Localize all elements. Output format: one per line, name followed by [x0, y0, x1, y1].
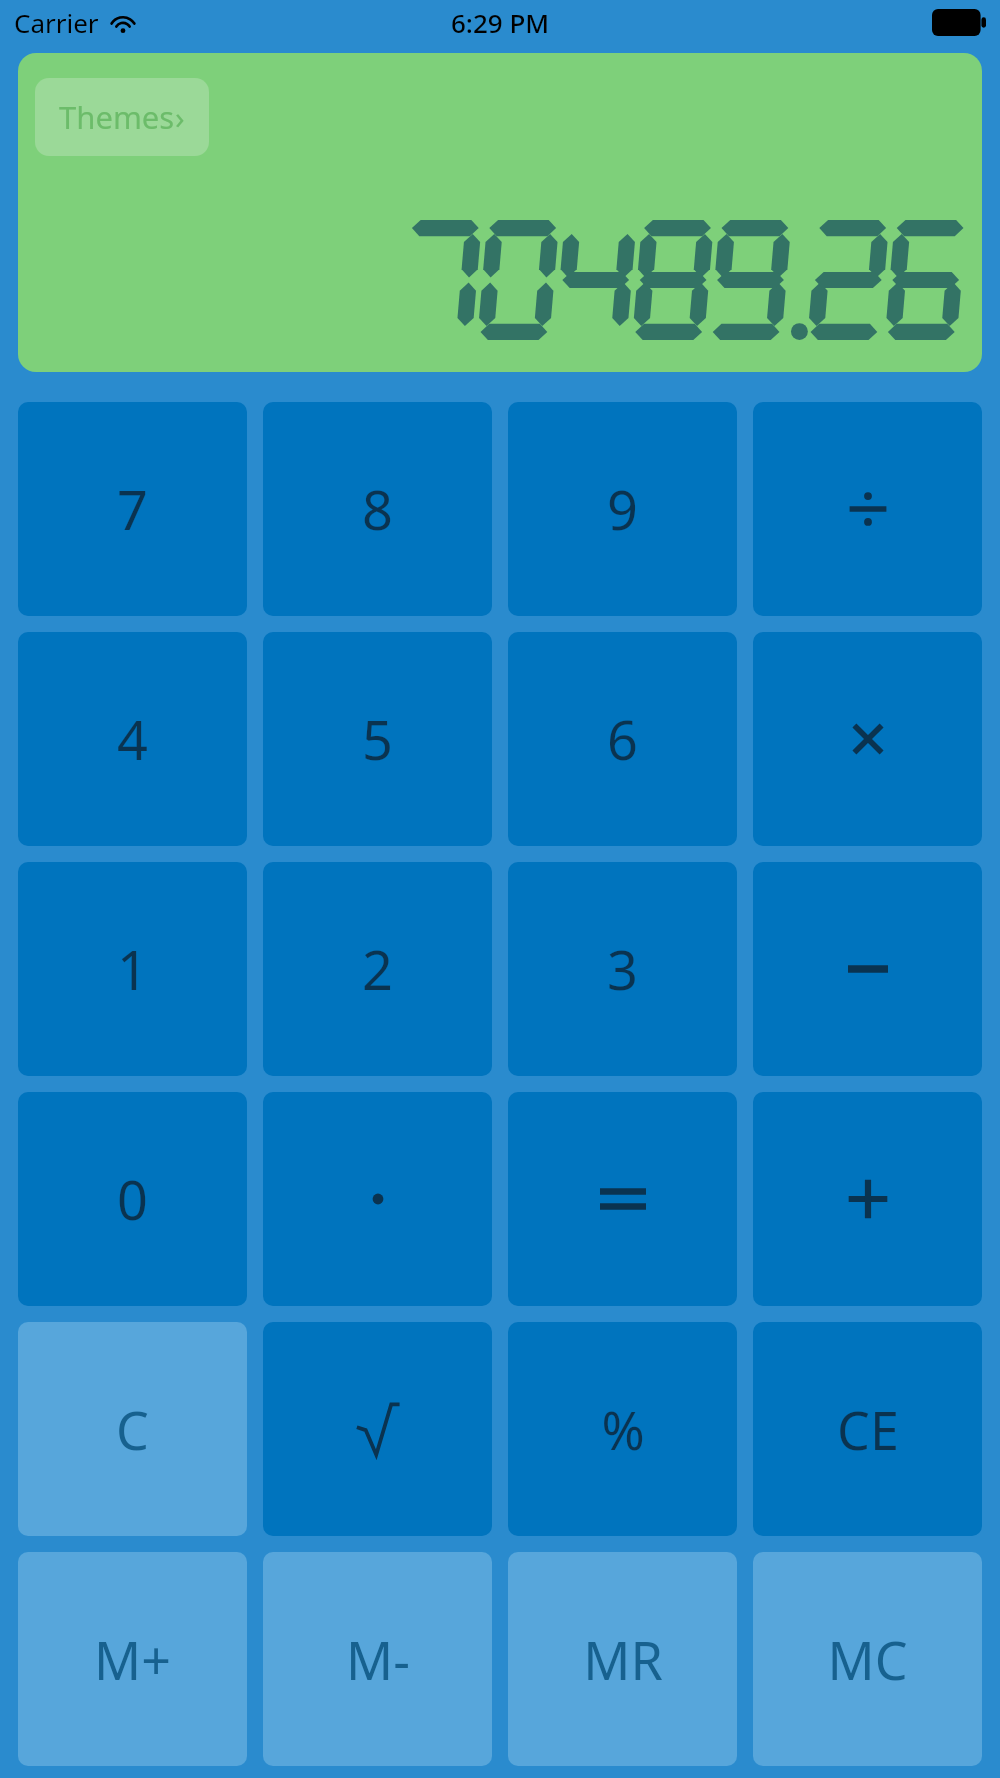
- button[interactable]: MC: [753, 1552, 982, 1766]
- staticText: 1: [117, 932, 148, 1006]
- button[interactable]: 7: [18, 402, 247, 616]
- button[interactable]: multiply: [753, 632, 982, 846]
- staticText: MC: [827, 1624, 908, 1695]
- button[interactable]: minus: [753, 862, 982, 1076]
- staticText: 0: [117, 1162, 148, 1236]
- staticText: Themes: [59, 96, 175, 138]
- button[interactable]: M+: [18, 1552, 247, 1766]
- staticText: 8: [362, 472, 393, 546]
- staticText: %: [601, 1394, 645, 1465]
- staticText: 9: [607, 472, 638, 546]
- staticText: 2: [362, 932, 393, 1006]
- staticText: M-: [346, 1624, 410, 1695]
- button[interactable]: 8: [263, 402, 492, 616]
- button[interactable]: 3: [508, 862, 737, 1076]
- button[interactable]: 9: [508, 402, 737, 616]
- button[interactable]: M-: [263, 1552, 492, 1766]
- staticText: 3: [607, 932, 638, 1006]
- staticText: M+: [94, 1624, 171, 1695]
- staticText: CE: [837, 1394, 899, 1465]
- staticText: 7: [117, 472, 148, 546]
- button[interactable]: 1: [18, 862, 247, 1076]
- button[interactable]: sqrt: [263, 1322, 492, 1536]
- button[interactable]: 2: [263, 862, 492, 1076]
- button[interactable]: MR: [508, 1552, 737, 1766]
- staticText: 6: [607, 702, 638, 776]
- staticText: ›: [175, 96, 185, 138]
- button[interactable]: plus: [753, 1092, 982, 1306]
- button[interactable]: dot: [263, 1092, 492, 1306]
- button[interactable]: equals: [508, 1092, 737, 1306]
- button[interactable]: divide: [753, 402, 982, 616]
- staticText: 6:29 PM: [451, 5, 550, 40]
- button[interactable]: 6: [508, 632, 737, 846]
- button[interactable]: C: [18, 1322, 247, 1536]
- staticText: 4: [117, 702, 148, 776]
- staticText: 5: [362, 702, 393, 776]
- button[interactable]: Themes: [35, 78, 209, 156]
- button[interactable]: 4: [18, 632, 247, 846]
- button[interactable]: %: [508, 1322, 737, 1536]
- button[interactable]: 5: [263, 632, 492, 846]
- button[interactable]: CE: [753, 1322, 982, 1536]
- staticText: C: [116, 1394, 149, 1465]
- button[interactable]: 0: [18, 1092, 247, 1306]
- staticText: Carrier: [14, 5, 99, 40]
- staticText: MR: [583, 1624, 663, 1695]
